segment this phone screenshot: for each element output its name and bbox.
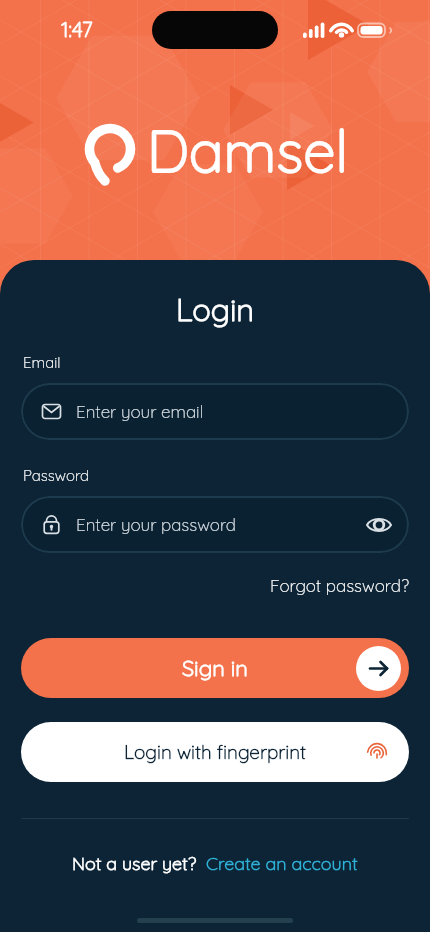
staticText: Enter your email bbox=[76, 401, 204, 422]
staticText: Forgot password? bbox=[270, 575, 409, 596]
staticText: Email bbox=[23, 353, 61, 372]
staticText: Password bbox=[23, 466, 90, 485]
button[interactable]: Create an account bbox=[206, 852, 358, 875]
button[interactable] bbox=[366, 512, 392, 538]
staticText: Login with fingerprint bbox=[124, 740, 307, 764]
button[interactable]: Login with fingerprint bbox=[21, 722, 409, 782]
staticText: Enter your password bbox=[76, 514, 237, 535]
button[interactable]: Forgot password? bbox=[270, 575, 409, 596]
staticText: Login bbox=[176, 290, 254, 329]
button[interactable]: Enter your password bbox=[21, 496, 409, 553]
button[interactable]: Enter your email bbox=[21, 383, 409, 440]
staticText: Create an account bbox=[206, 852, 358, 875]
staticText: Not a user yet? bbox=[72, 852, 197, 875]
staticText: 1:47 bbox=[61, 16, 93, 42]
staticText: Sign in bbox=[182, 654, 248, 682]
button[interactable]: Sign in bbox=[21, 638, 409, 698]
staticText: Damsel bbox=[147, 114, 348, 187]
